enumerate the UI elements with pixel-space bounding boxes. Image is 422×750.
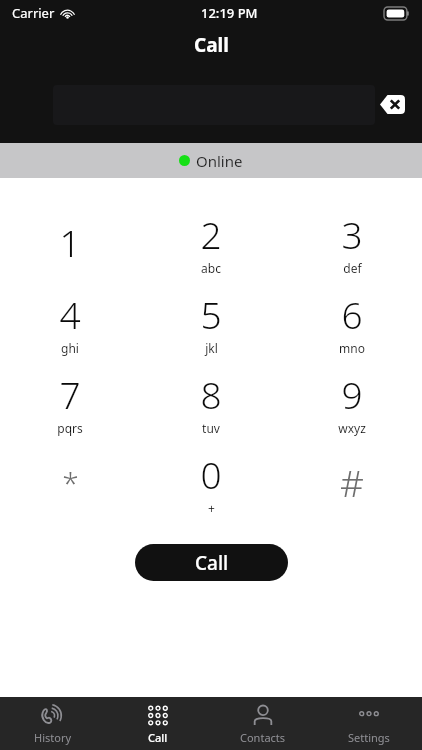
staticText: jkl <box>205 340 218 356</box>
button[interactable]: Settings <box>316 697 422 750</box>
staticText: tuv <box>202 420 220 436</box>
staticText: Contacts <box>240 730 286 745</box>
staticText: abc <box>201 260 221 276</box>
button[interactable]: 1 <box>0 204 140 284</box>
staticText: 4 <box>59 289 81 339</box>
button[interactable]: Call <box>105 697 210 750</box>
staticText: 6 <box>341 289 363 339</box>
button[interactable]: 5 <box>140 284 281 364</box>
button[interactable]: Contacts <box>210 697 316 750</box>
staticText: pqrs <box>57 420 83 436</box>
staticText: Call <box>148 730 168 745</box>
button[interactable]: History <box>0 697 105 750</box>
staticText: 2 <box>200 209 222 259</box>
staticText: + <box>208 500 215 516</box>
button[interactable]: 4 <box>0 284 140 364</box>
staticText: # <box>340 457 364 507</box>
staticText: 8 <box>200 369 222 419</box>
staticText: 9 <box>341 369 363 419</box>
staticText: Carrier <box>12 4 55 22</box>
button[interactable]: 0 <box>140 444 281 524</box>
staticText: Online <box>196 151 243 171</box>
staticText: ghi <box>61 340 79 356</box>
button[interactable]: Backspace <box>378 92 406 116</box>
staticText: 1 <box>59 217 81 267</box>
button[interactable]: 2 <box>140 204 281 284</box>
button[interactable]: 3 <box>281 204 422 284</box>
staticText: Call <box>194 32 229 58</box>
staticText: 3 <box>341 209 363 259</box>
staticText: def <box>343 260 362 276</box>
button[interactable]: # <box>281 444 422 524</box>
staticText: wxyz <box>338 420 366 436</box>
staticText: * <box>62 462 79 503</box>
staticText: 0 <box>200 449 222 499</box>
button[interactable]: * <box>0 444 140 524</box>
button[interactable]: 9 <box>281 364 422 444</box>
button[interactable]: 8 <box>140 364 281 444</box>
button[interactable]: 7 <box>0 364 140 444</box>
staticText: Settings <box>348 730 390 745</box>
button[interactable]: Call <box>135 544 288 581</box>
staticText: Call <box>195 550 229 576</box>
button[interactable]: 6 <box>281 284 422 364</box>
staticText: mno <box>339 340 365 356</box>
staticText: History <box>34 730 72 745</box>
staticText: 5 <box>200 289 222 339</box>
staticText: 7 <box>59 369 81 419</box>
staticText: 12:19 PM <box>201 4 258 22</box>
